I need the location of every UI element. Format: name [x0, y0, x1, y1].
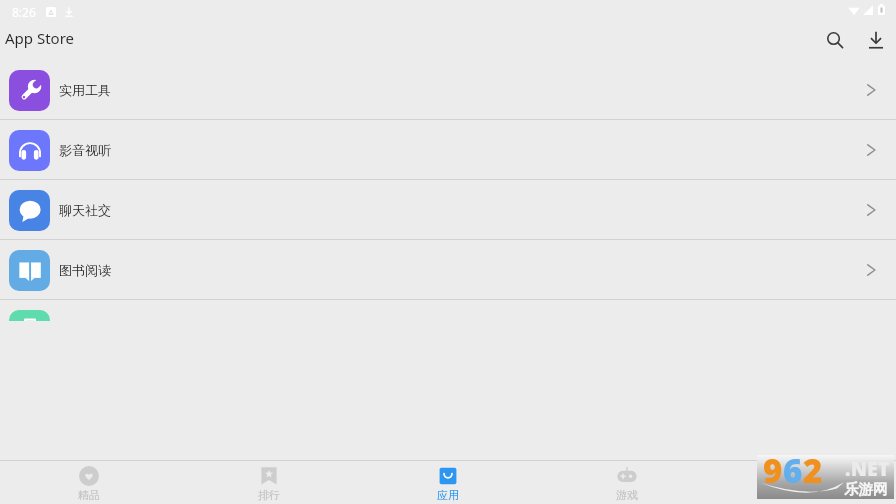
staticText: 精品 [78, 488, 100, 502]
staticText: 影音视听 [59, 142, 111, 158]
staticText: 图书阅读 [59, 262, 111, 278]
staticText: 排行 [258, 488, 280, 502]
staticText: 应用 [437, 488, 459, 502]
staticText: App Store [5, 28, 75, 48]
staticText: 实用工具 [59, 82, 111, 98]
staticText: 游戏 [616, 488, 638, 502]
button[interactable]: 摄影摄像 [0, 300, 896, 321]
staticText: 乐游网 [844, 480, 888, 498]
staticText: 8:26 [12, 4, 36, 20]
staticText: 2 [803, 448, 823, 492]
button[interactable]: 游戏 [592, 462, 662, 504]
staticText: 9 [763, 448, 783, 492]
button[interactable]: Downloads [859, 23, 893, 57]
button[interactable]: 影音视听 [0, 120, 896, 180]
button[interactable]: 图书阅读 [0, 240, 896, 300]
staticText: 6 [783, 448, 803, 492]
button[interactable]: 应用 [413, 462, 483, 504]
button[interactable]: 排行 [234, 462, 304, 504]
staticText: .NET [845, 456, 890, 482]
button[interactable]: Search [818, 23, 852, 57]
button[interactable]: 实用工具 [0, 60, 896, 120]
button[interactable]: 聊天社交 [0, 180, 896, 240]
button[interactable]: 精品 [54, 462, 124, 504]
staticText: 聊天社交 [59, 202, 111, 218]
